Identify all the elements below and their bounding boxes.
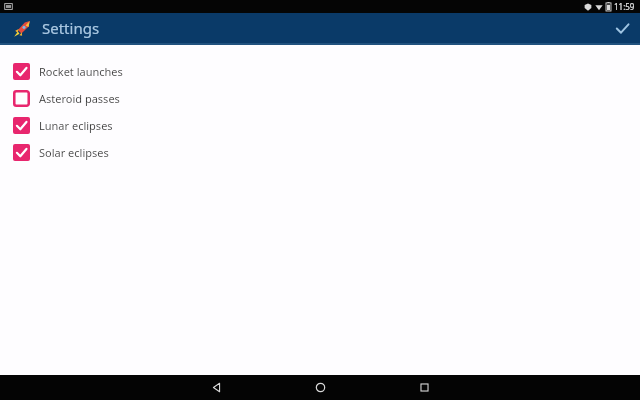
staticText: Solar eclipses [39,145,109,160]
button[interactable]: Rocket launches [0,58,640,85]
button[interactable]: Solar eclipses [0,139,640,166]
button[interactable]: Asteroid passes [0,85,640,112]
staticText: Rocket launches [39,64,123,79]
staticText: 11:59 [614,1,635,12]
button[interactable]: Done [604,13,640,43]
button[interactable]: Lunar eclipses [0,112,640,139]
button[interactable]: Recent apps [394,375,454,400]
staticText: Settings [42,18,100,38]
staticText: Lunar eclipses [39,118,113,133]
button[interactable]: Home [290,375,350,400]
button[interactable]: Back [186,375,246,400]
staticText: Asteroid passes [39,91,120,106]
